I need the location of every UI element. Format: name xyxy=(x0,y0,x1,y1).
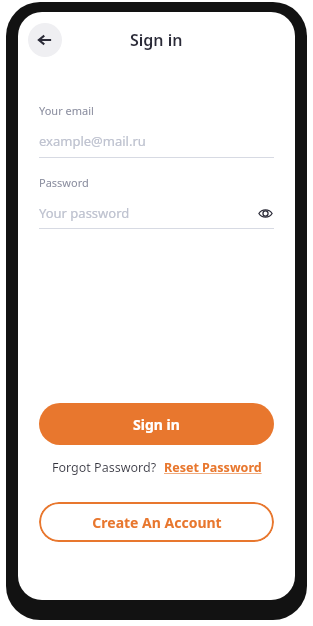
button[interactable]: Show password xyxy=(256,204,274,222)
button[interactable]: Your password xyxy=(39,204,274,222)
button[interactable]: Create An Account xyxy=(39,502,274,542)
staticText: Your password xyxy=(39,204,256,222)
staticText: Sign in xyxy=(133,415,180,434)
staticText: example@mail.ru xyxy=(39,132,146,150)
staticText: Forgot Password? xyxy=(52,459,157,476)
staticText: Your email xyxy=(39,103,94,118)
button[interactable]: Sign in xyxy=(39,403,274,445)
staticText: Sign in xyxy=(130,29,183,51)
button[interactable]: Reset Password xyxy=(164,459,262,476)
button[interactable]: Back xyxy=(28,23,62,57)
staticText: Reset Password xyxy=(164,459,262,476)
staticText: Create An Account xyxy=(92,513,222,532)
staticText: Password xyxy=(39,175,89,190)
button[interactable]: example@mail.ru xyxy=(39,132,274,150)
